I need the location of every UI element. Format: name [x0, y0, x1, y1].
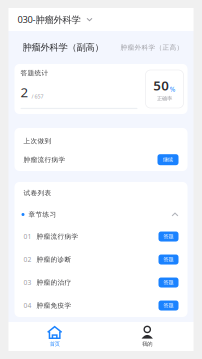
button[interactable]: 答题 [158, 254, 178, 264]
staticText: 答题 [163, 256, 173, 263]
staticText: 肿瘤的诊断 [36, 255, 71, 264]
button[interactable]: 继续 [157, 154, 178, 165]
staticText: 肿瘤流行病学 [23, 156, 65, 164]
button[interactable]: 肿瘤外科学（正高） [120, 31, 183, 64]
staticText: / 657 [31, 93, 43, 100]
staticText: 肿瘤流行病学 [36, 232, 78, 241]
staticText: 01 [23, 232, 31, 241]
staticText: 章节练习 [28, 210, 56, 219]
staticText: 答题 [163, 279, 173, 286]
staticText: 04 [23, 301, 31, 310]
staticText: 首页 [50, 341, 60, 347]
button[interactable]: 肿瘤外科学（副高） [22, 31, 103, 64]
staticText: 答题 [163, 302, 173, 309]
staticText: % [170, 85, 176, 94]
staticText: 肿瘤的治疗 [36, 278, 71, 287]
staticText: 肿瘤免疫学 [36, 301, 71, 310]
button[interactable]: 首页 [8, 322, 101, 351]
button[interactable]: 章节练习 [14, 204, 187, 225]
staticText: 上次做到 [23, 137, 51, 145]
staticText: 肿瘤外科学（正高） [120, 43, 183, 52]
staticText: 02 [23, 255, 31, 264]
button[interactable]: 04 [14, 294, 187, 317]
staticText: 正确率 [157, 95, 172, 102]
button[interactable]: 我的 [101, 322, 193, 351]
staticText: 继续 [163, 156, 173, 163]
staticText: 肿瘤外科学（副高） [22, 42, 103, 53]
button[interactable]: 答题 [158, 277, 178, 287]
staticText: 我的 [142, 341, 152, 347]
staticText: 2 [20, 83, 28, 101]
staticText: 030-肿瘤外科学 [17, 13, 80, 26]
button[interactable]: 01 [14, 225, 187, 248]
staticText: 答题统计 [20, 69, 48, 77]
button[interactable]: 答题 [158, 231, 178, 241]
button[interactable]: 030-肿瘤外科学 [8, 8, 100, 31]
button[interactable]: 03 [14, 271, 187, 294]
staticText: 03 [23, 278, 31, 287]
staticText: 试卷列表 [23, 189, 51, 197]
staticText: 答题 [163, 233, 173, 240]
staticText: 50 [153, 76, 169, 94]
button[interactable]: 02 [14, 248, 187, 271]
button[interactable]: 答题 [158, 300, 178, 310]
